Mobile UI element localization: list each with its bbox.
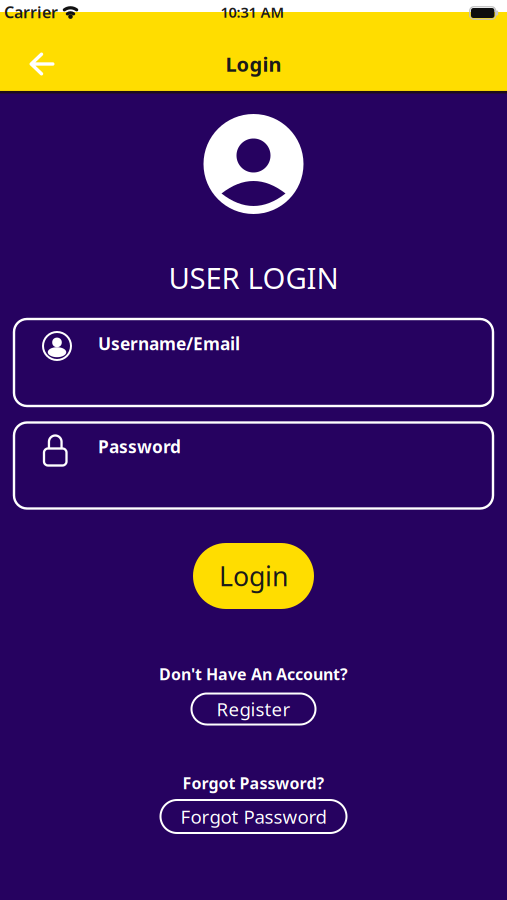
staticText: 10:31 AM [220,2,284,22]
staticText: Username/Email [98,332,240,355]
staticText: Forgot Password? [182,772,324,794]
staticText: Register [216,697,290,721]
staticText: Don't Have An Account? [159,663,348,685]
staticText: Password [98,435,181,458]
button[interactable]: Password [14,422,493,508]
button[interactable]: Forgot Password [160,800,346,833]
button[interactable]: Username/Email [14,319,493,406]
button[interactable]: Login [193,543,314,609]
staticText: Carrier [4,1,58,23]
staticText: Login [219,558,288,594]
button[interactable]: Register [191,693,315,724]
staticText: Login [225,51,281,77]
staticText: Forgot Password [180,804,326,829]
button[interactable]: Back [18,41,66,87]
staticText: USER LOGIN [168,258,338,297]
